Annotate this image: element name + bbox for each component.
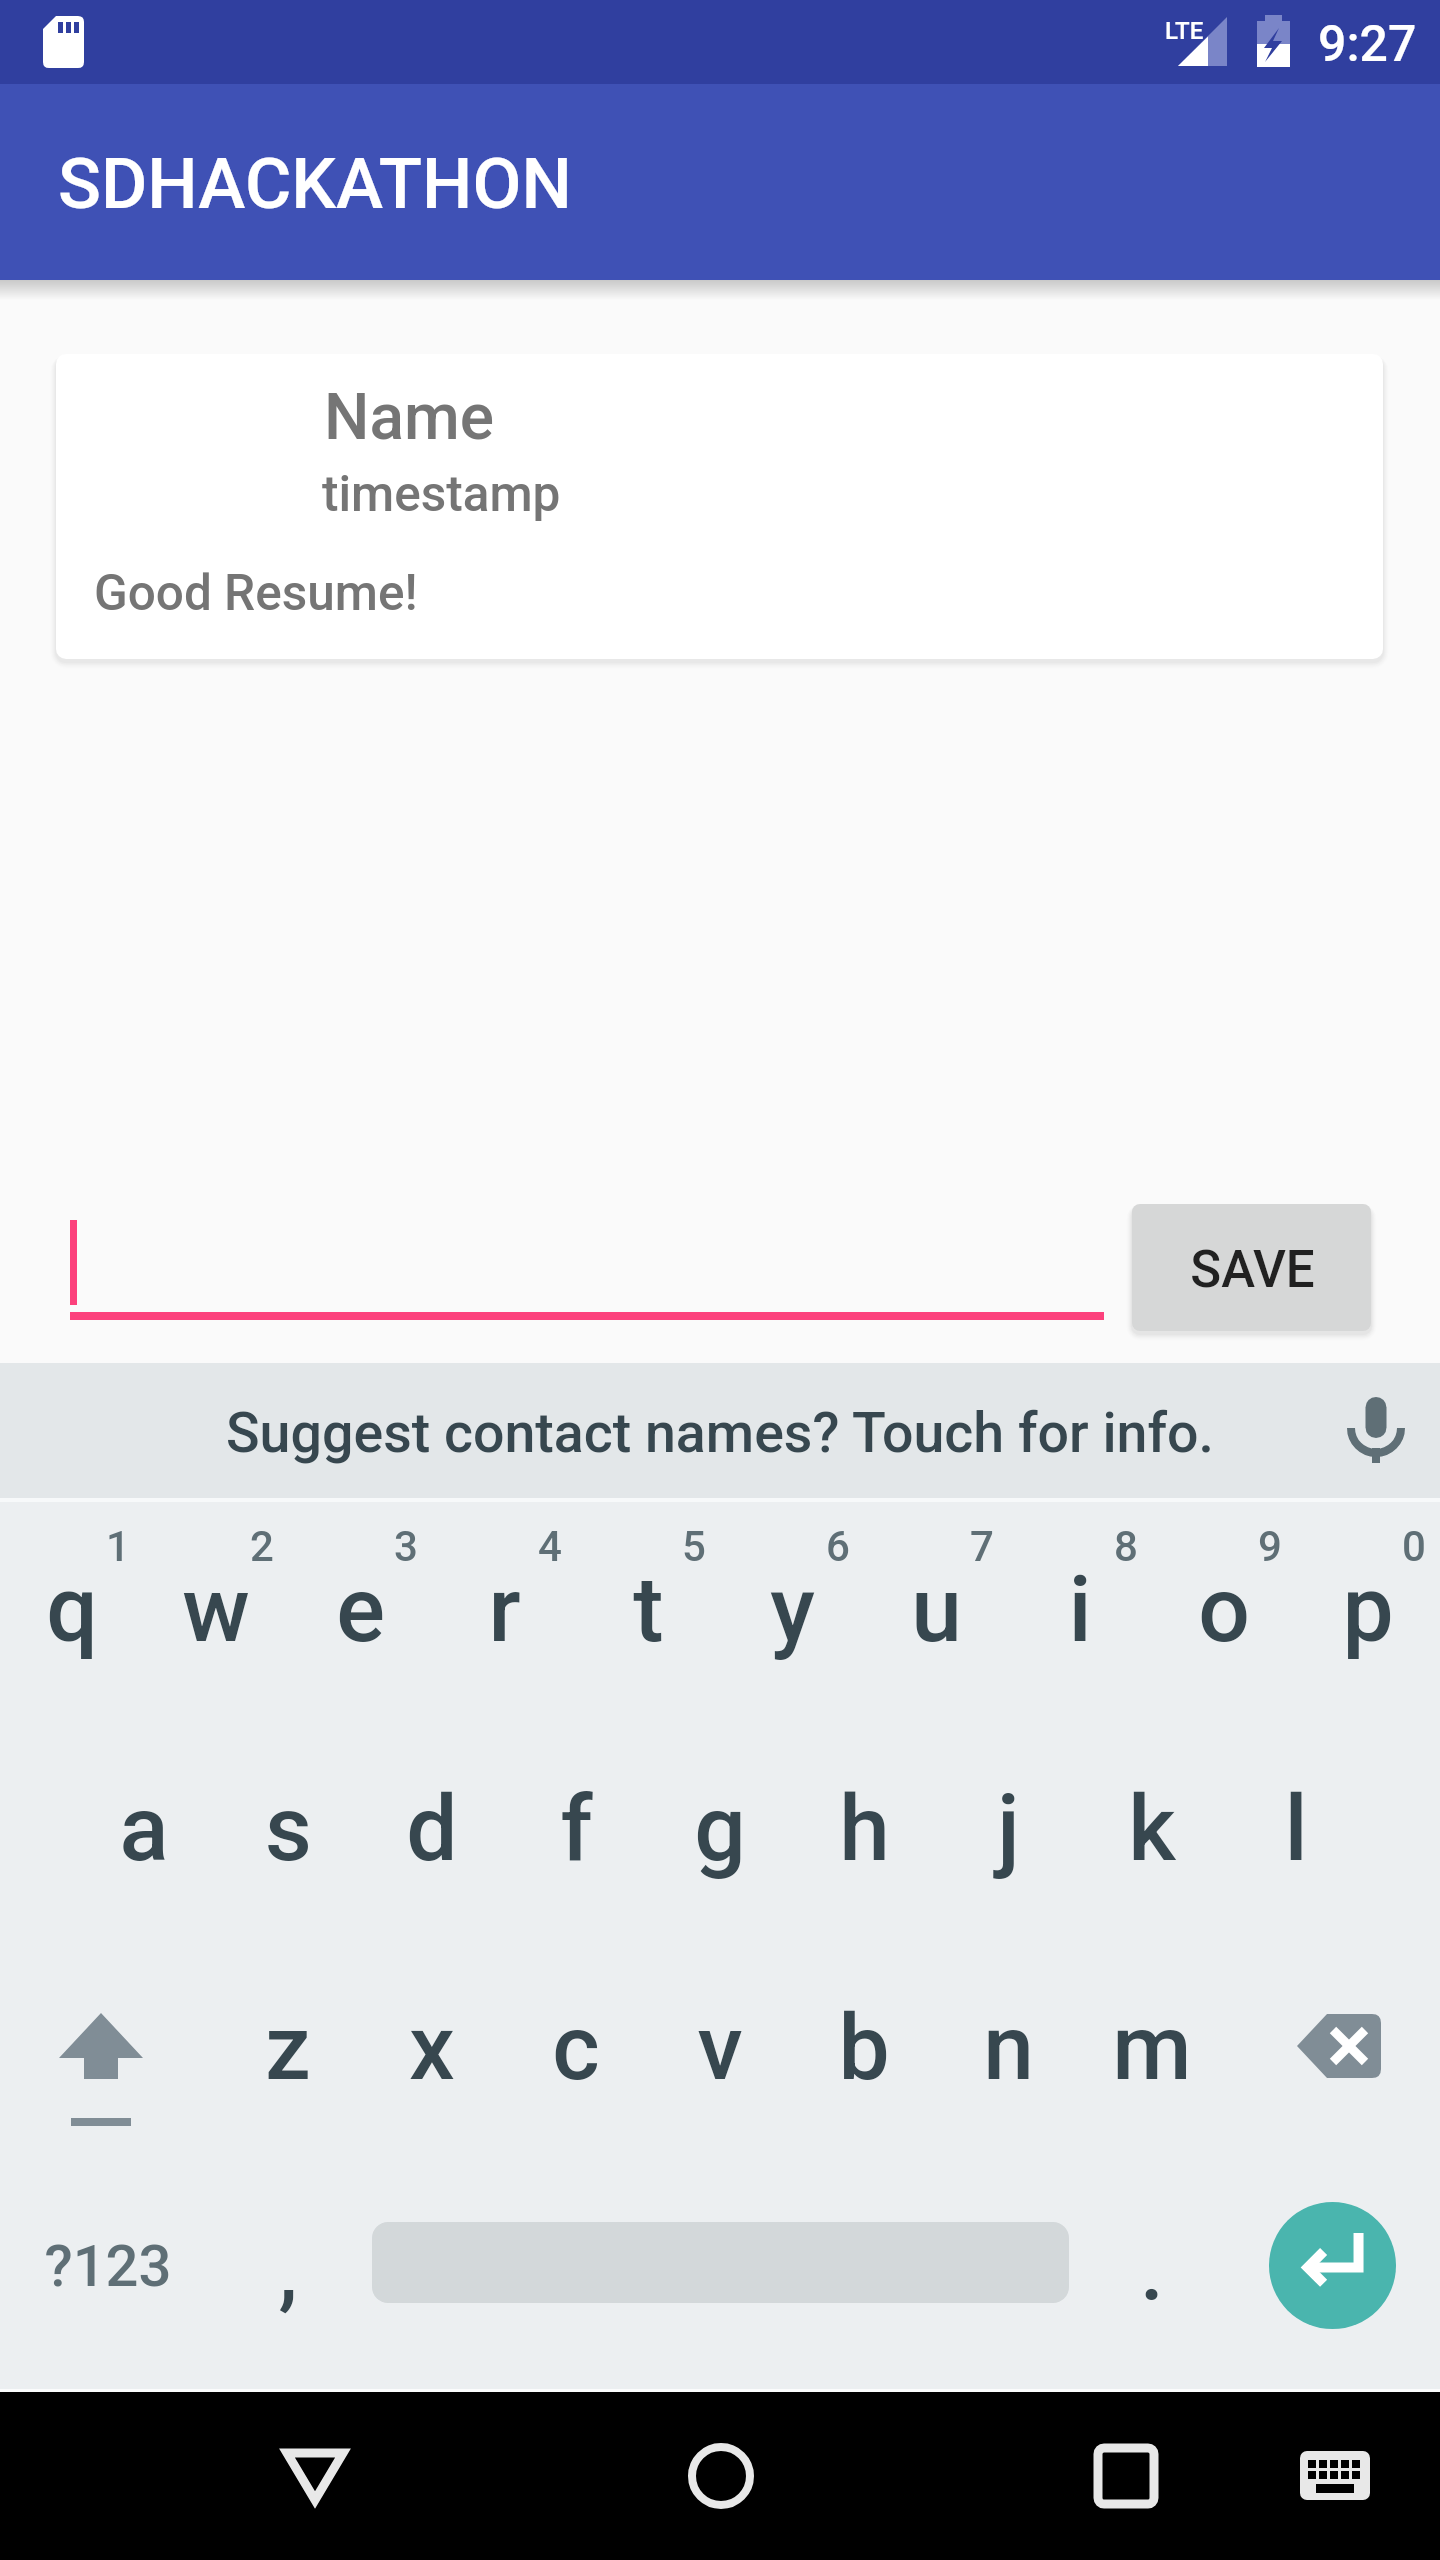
button[interactable]: Shift <box>0 1945 144 2166</box>
button[interactable]: l <box>1224 1724 1368 1945</box>
button[interactable]: Voice input <box>1340 1383 1412 1483</box>
staticText: Suggest contact names? Touch for info. <box>226 1401 1214 1466</box>
button[interactable]: o <box>1152 1503 1296 1724</box>
button[interactable]: Switch keyboard <box>1265 2416 1405 2536</box>
staticText: Good Resume! <box>94 564 418 622</box>
staticText: c <box>552 1995 600 2102</box>
staticText: 7 <box>970 1522 994 1571</box>
button[interactable]: u <box>864 1503 1008 1724</box>
staticText: a <box>119 1776 169 1883</box>
button[interactable]: h <box>792 1724 936 1945</box>
button[interactable]: b <box>792 1945 936 2166</box>
button[interactable]: Enter <box>1269 2202 1396 2329</box>
button[interactable]: Back <box>235 2416 395 2536</box>
staticText: m <box>1112 1995 1192 2102</box>
staticText: g <box>694 1776 746 1883</box>
staticText: y <box>770 1557 815 1664</box>
staticText: b <box>838 1995 890 2102</box>
staticText: x <box>409 1995 455 2102</box>
staticText: z <box>265 1995 311 2102</box>
button[interactable]: Suggest contact names? Touch for info. <box>0 1363 1440 1498</box>
staticText: SDHACKATHON <box>58 142 572 225</box>
staticText: e <box>336 1557 385 1664</box>
button[interactable]: a <box>72 1724 216 1945</box>
button[interactable]: k <box>1080 1724 1224 1945</box>
staticText: l <box>1284 1776 1308 1883</box>
staticText: j <box>997 1776 1020 1883</box>
staticText: 8 <box>1114 1522 1138 1571</box>
button[interactable]: s <box>216 1724 360 1945</box>
staticText: SAVE <box>1190 1240 1315 1300</box>
staticText: h <box>839 1776 890 1883</box>
button[interactable]: e <box>288 1503 432 1724</box>
staticText: . <box>1140 2220 1164 2321</box>
staticText: 0 <box>1402 1522 1426 1571</box>
staticText: ?123 <box>44 2232 172 2300</box>
staticText: w <box>182 1557 250 1664</box>
button[interactable]: f <box>504 1724 648 1945</box>
staticText: q <box>46 1557 98 1664</box>
staticText: 5 <box>682 1522 706 1571</box>
staticText: f <box>560 1776 593 1883</box>
staticText: v <box>697 1995 743 2102</box>
button[interactable]: i <box>1008 1503 1152 1724</box>
button[interactable]: . <box>1080 2166 1224 2387</box>
button[interactable]: t <box>576 1503 720 1724</box>
button[interactable]: Backspace <box>1296 1945 1440 2166</box>
staticText: timestamp <box>322 465 561 523</box>
staticText: 3 <box>394 1522 418 1571</box>
staticText: k <box>1128 1776 1176 1883</box>
staticText: r <box>488 1557 521 1664</box>
button[interactable]: x <box>360 1945 504 2166</box>
staticText: 4 <box>538 1522 562 1571</box>
button[interactable]: g <box>648 1724 792 1945</box>
button[interactable]: Recent apps <box>1046 2416 1206 2536</box>
button[interactable]: , <box>216 2166 360 2387</box>
button[interactable]: d <box>360 1724 504 1945</box>
button[interactable]: w <box>144 1503 288 1724</box>
staticText: , <box>278 2220 298 2321</box>
staticText: 9 <box>1258 1522 1282 1571</box>
staticText: i <box>1068 1557 1092 1664</box>
button[interactable]: Name <box>56 354 1383 659</box>
button[interactable]: ?123 <box>36 2166 180 2387</box>
button[interactable]: m <box>1080 1945 1224 2166</box>
button[interactable]: SAVE <box>1132 1204 1371 1331</box>
staticText: t <box>633 1557 664 1664</box>
staticText: n <box>983 1995 1034 2102</box>
staticText: u <box>911 1557 962 1664</box>
button[interactable]: y <box>720 1503 864 1724</box>
staticText: p <box>1342 1557 1394 1664</box>
staticText: Name <box>324 380 494 455</box>
button[interactable]: z <box>216 1945 360 2166</box>
staticText: d <box>406 1776 458 1883</box>
button[interactable]: v <box>648 1945 792 2166</box>
button[interactable]: Home <box>641 2416 801 2536</box>
button[interactable]: r <box>432 1503 576 1724</box>
staticText: LTE <box>1165 17 1204 45</box>
button[interactable]: c <box>504 1945 648 2166</box>
button[interactable]: p <box>1296 1503 1440 1724</box>
staticText: 1 <box>106 1522 130 1571</box>
staticText: s <box>265 1776 312 1883</box>
staticText: 9:27 <box>1318 15 1417 74</box>
staticText: o <box>1198 1557 1250 1664</box>
staticText: 6 <box>826 1522 850 1571</box>
staticText: 2 <box>250 1522 274 1571</box>
button[interactable]: n <box>936 1945 1080 2166</box>
button[interactable]: q <box>0 1503 144 1724</box>
button[interactable]: j <box>936 1724 1080 1945</box>
